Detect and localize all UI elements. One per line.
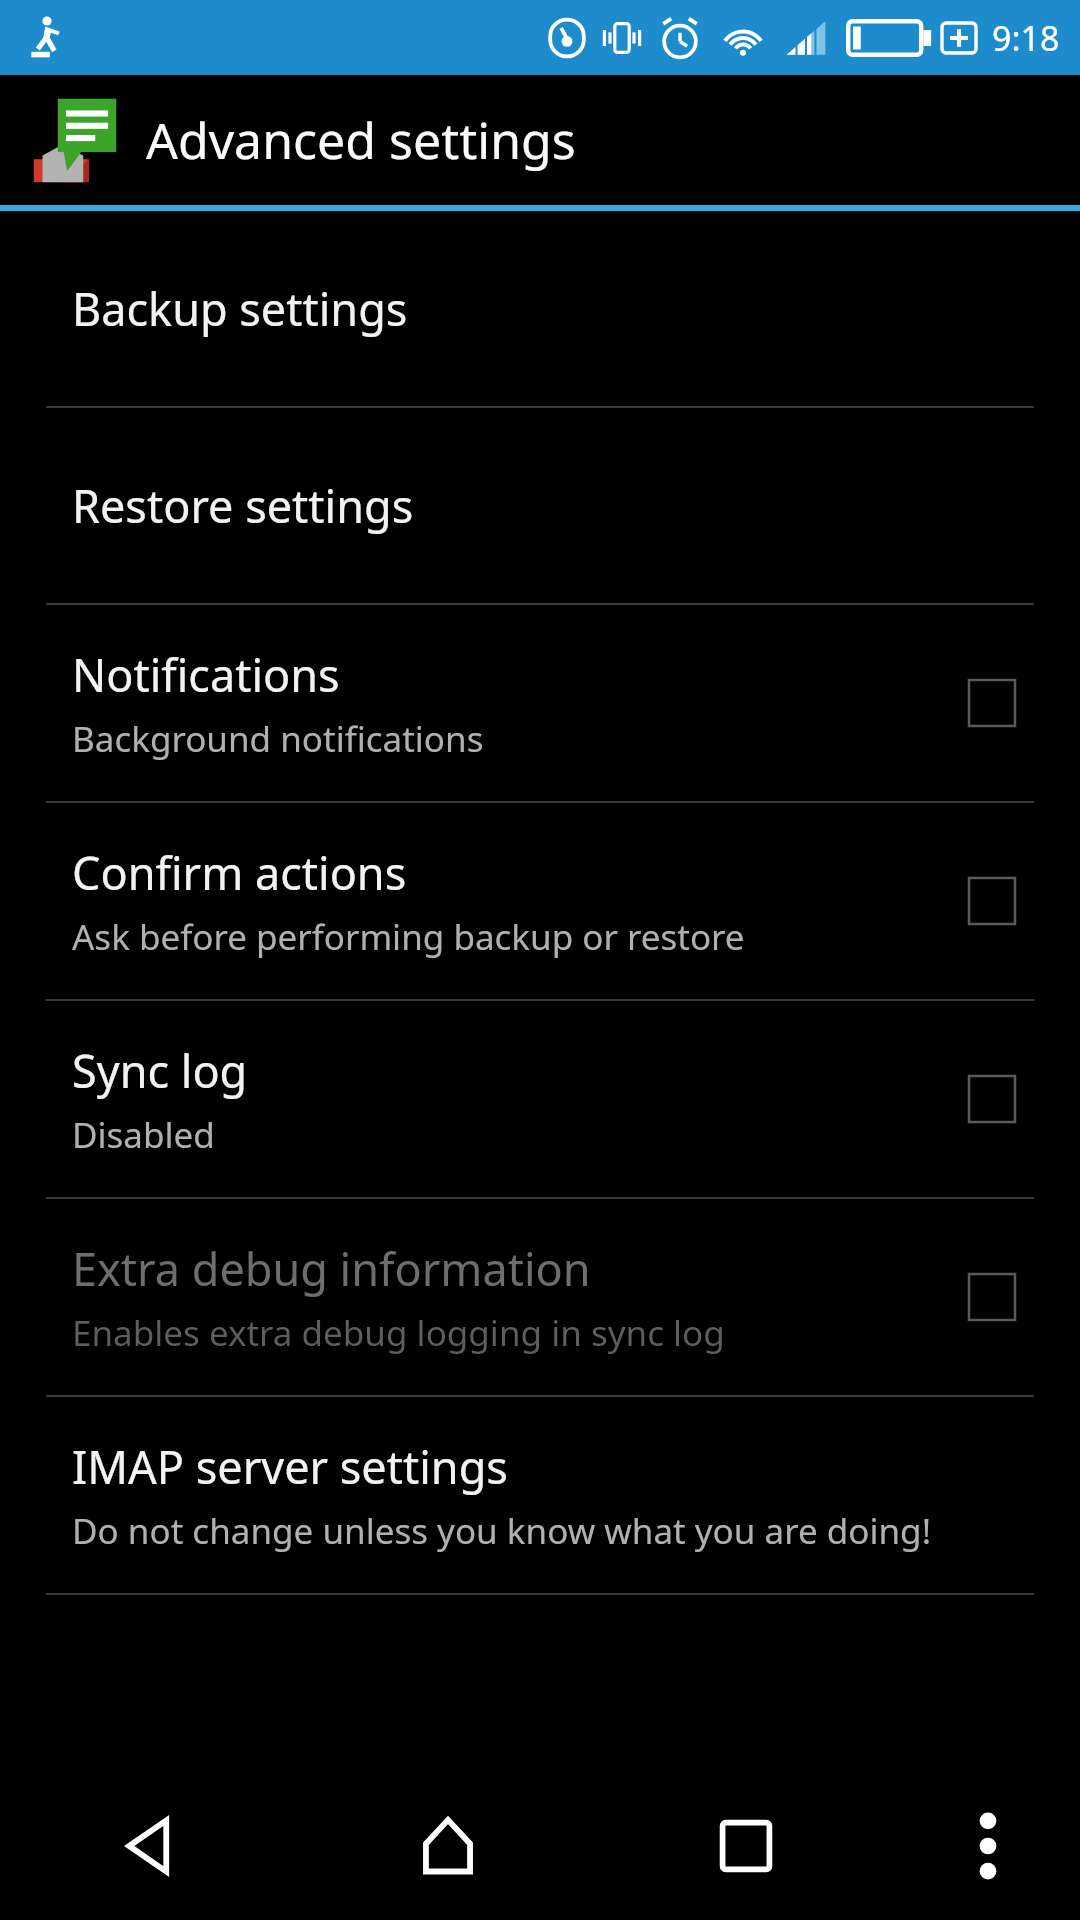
staticText: Disabled <box>72 1111 215 1159</box>
button[interactable]: Confirm actions checkbox <box>944 853 1040 949</box>
button[interactable]: Backup settings <box>0 211 1080 406</box>
button[interactable]: Back <box>0 1772 299 1920</box>
staticText: Confirm actions <box>72 842 407 903</box>
staticText: Sync log <box>72 1040 248 1101</box>
staticText: Restore settings <box>72 475 414 536</box>
button[interactable]: Notifications checkbox <box>944 655 1040 751</box>
button[interactable]: Advanced settings <box>0 75 1080 205</box>
button[interactable]: Confirm actions <box>0 803 1080 999</box>
button[interactable]: Restore settings <box>0 408 1080 603</box>
staticText: Advanced settings <box>146 106 576 174</box>
button[interactable]: Recent apps <box>597 1772 895 1920</box>
button[interactable]: Extra debug information <box>0 1199 1080 1395</box>
staticText: Notifications <box>72 644 340 705</box>
button[interactable]: Sync log <box>0 1001 1080 1197</box>
staticText: Enables extra debug logging in sync log <box>72 1309 725 1357</box>
button[interactable]: Notifications <box>0 605 1080 801</box>
staticText: Ask before performing backup or restore <box>72 913 745 961</box>
button[interactable]: Home <box>299 1772 597 1920</box>
button[interactable]: Extra debug information checkbox <box>944 1249 1040 1345</box>
button[interactable]: More options <box>895 1772 1080 1920</box>
staticText: Backup settings <box>72 278 408 339</box>
staticText: Do not change unless you know what you a… <box>72 1507 932 1555</box>
button[interactable]: IMAP server settings <box>0 1397 1080 1593</box>
button[interactable]: Sync log checkbox <box>944 1051 1040 1147</box>
staticText: IMAP server settings <box>72 1436 508 1497</box>
staticText: Background notifications <box>72 715 484 763</box>
staticText: Extra debug information <box>72 1238 591 1299</box>
staticText: 9:18 <box>992 15 1060 61</box>
